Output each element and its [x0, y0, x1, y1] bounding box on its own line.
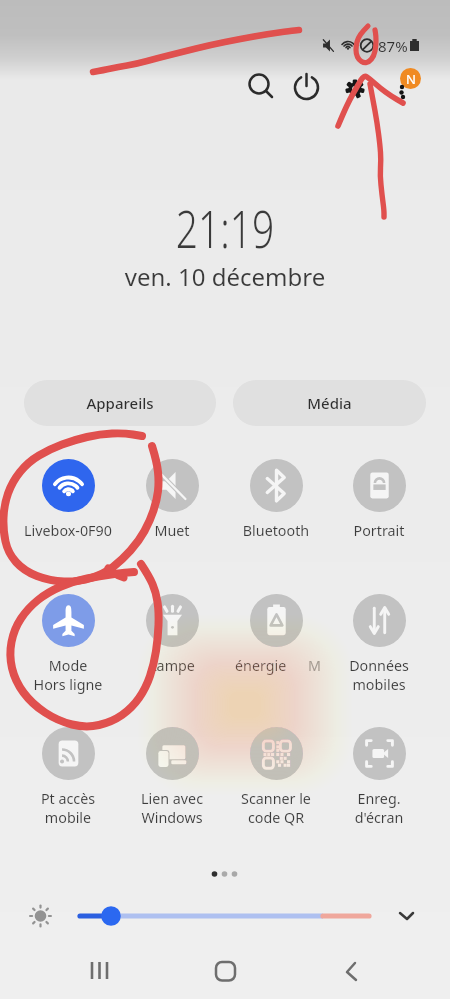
- staticText: Muet: [120, 521, 224, 540]
- button[interactable]: Enreg. d'écran: [327, 727, 431, 827]
- staticText: 87%: [378, 36, 408, 56]
- button[interactable]: Bluetooth: [224, 459, 328, 540]
- button[interactable]: Pt accès mobile: [16, 727, 120, 827]
- staticText: [224, 656, 328, 675]
- staticText: Portrait: [327, 521, 431, 540]
- staticText: 21:19: [38, 194, 412, 263]
- button[interactable]: Portrait: [327, 459, 431, 540]
- button[interactable]: Livebox-0F90: [16, 459, 120, 540]
- staticText: Média: [307, 393, 352, 413]
- staticText: Livebox-0F90: [16, 521, 120, 540]
- button[interactable]: Rechercher: [240, 66, 282, 108]
- staticText: Appareils: [86, 393, 154, 413]
- button[interactable]: Lampe: [120, 594, 224, 675]
- button[interactable]: Marche/Arrêt: [286, 66, 328, 108]
- button[interactable]: [224, 594, 328, 675]
- staticText: M: [308, 656, 321, 675]
- staticText: énergie: [235, 656, 287, 675]
- button[interactable]: Paramètres: [334, 68, 376, 110]
- button[interactable]: Accueil: [196, 945, 254, 999]
- staticText: Bluetooth: [224, 521, 328, 540]
- button[interactable]: Retour: [327, 945, 385, 999]
- button[interactable]: Scanner le code QR: [224, 727, 328, 827]
- button[interactable]: Média: [233, 380, 426, 426]
- button[interactable]: Luminosité: [0, 888, 450, 944]
- staticText: ven. 10 décembre: [0, 260, 450, 293]
- button[interactable]: Données mobiles: [327, 594, 431, 694]
- button[interactable]: Lien avec Windows: [120, 727, 224, 827]
- staticText: Pt accès mobile: [16, 789, 120, 827]
- staticText: Lampe: [120, 656, 224, 675]
- button[interactable]: Mode Hors ligne: [16, 594, 120, 694]
- staticText: Données mobiles: [327, 656, 431, 694]
- button[interactable]: Appareils: [24, 380, 216, 426]
- button[interactable]: Muet: [120, 459, 224, 540]
- staticText: Scanner le code QR: [224, 789, 328, 827]
- staticText: Enreg. d'écran: [327, 789, 431, 827]
- button[interactable]: Compte: [400, 68, 421, 89]
- button[interactable]: Applications récentes: [70, 945, 128, 999]
- staticText: N: [406, 70, 416, 88]
- staticText: Mode Hors ligne: [16, 656, 120, 694]
- staticText: Lien avec Windows: [120, 789, 224, 827]
